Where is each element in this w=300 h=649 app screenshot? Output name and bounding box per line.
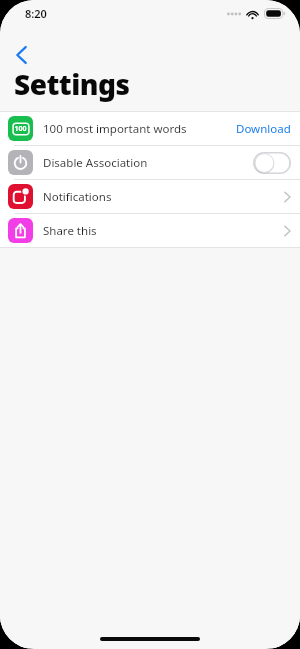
- staticText: Download: [236, 121, 291, 137]
- button[interactable]: Share this: [0, 214, 300, 247]
- button[interactable]: Notifications: [0, 180, 300, 213]
- staticText: Notifications: [43, 189, 112, 205]
- staticText: 8:20: [25, 6, 47, 21]
- button[interactable]: 100: [0, 112, 300, 145]
- button[interactable]: Download: [236, 121, 291, 137]
- button[interactable]: Disable Association: [0, 146, 300, 179]
- staticText: 100: [14, 124, 27, 134]
- staticText: Share this: [43, 223, 97, 239]
- staticText: 100 most important words: [43, 121, 187, 137]
- staticText: Disable Association: [43, 155, 148, 171]
- button[interactable]: Disable Association toggle: [253, 152, 291, 174]
- button[interactable]: Back: [4, 38, 38, 72]
- staticText: Settings: [14, 65, 130, 103]
